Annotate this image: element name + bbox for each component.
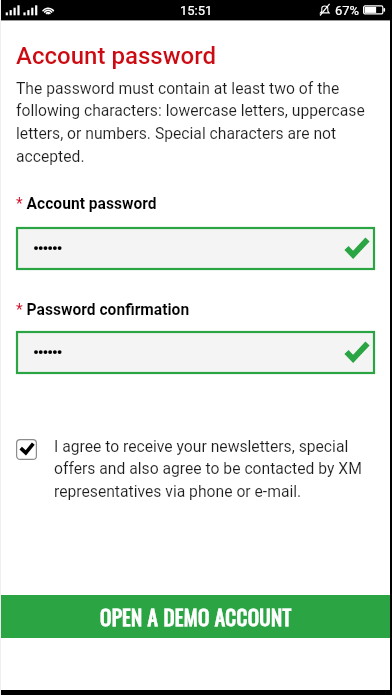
staticText: 67% <box>335 3 360 18</box>
button[interactable]: Password confirmation, entered <box>16 331 375 374</box>
staticText: Account password <box>16 42 217 70</box>
staticText: OPEN A DEMO ACCOUNT <box>100 601 292 632</box>
staticText: * Account password <box>16 195 157 213</box>
staticText: 15:51 <box>180 3 213 18</box>
staticText: I agree to receive your newsletters, spe… <box>54 437 368 501</box>
button[interactable]: I agree, checked <box>16 437 368 501</box>
other: I agree, checked <box>16 439 37 460</box>
staticText: * Password confirmation <box>16 301 190 319</box>
button[interactable]: OPEN A DEMO ACCOUNT <box>0 595 392 638</box>
button[interactable]: Account password, entered <box>16 227 375 270</box>
staticText: The password must contain at least two o… <box>16 79 376 166</box>
